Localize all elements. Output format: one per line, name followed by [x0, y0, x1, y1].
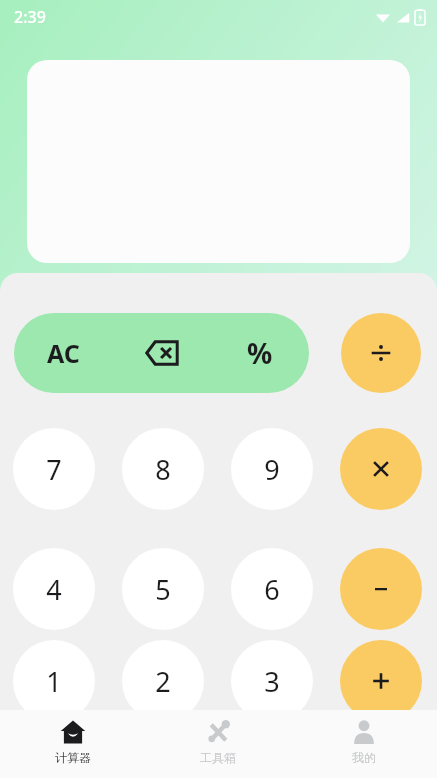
- staticText: 我的: [352, 750, 376, 765]
- button[interactable]: 8: [122, 428, 204, 510]
- staticText: 1: [46, 663, 62, 700]
- button[interactable]: AC: [14, 313, 112, 393]
- staticText: %: [247, 334, 273, 372]
- button[interactable]: Operator: [340, 428, 422, 510]
- staticText: 8: [155, 451, 171, 488]
- staticText: 4: [46, 571, 62, 608]
- button[interactable]: Operator: [341, 313, 421, 393]
- button[interactable]: 3: [231, 640, 313, 722]
- staticText: 2: [155, 663, 171, 700]
- button[interactable]: 6: [231, 548, 313, 630]
- button[interactable]: %: [211, 313, 309, 393]
- staticText: 9: [264, 451, 280, 488]
- staticText: 计算器: [55, 750, 91, 765]
- staticText: 2:39: [14, 6, 46, 28]
- staticText: 5: [155, 571, 171, 608]
- button[interactable]: 1: [13, 640, 95, 722]
- button[interactable]: 计算器: [0, 710, 145, 778]
- button[interactable]: 7: [13, 428, 95, 510]
- button[interactable]: 9: [231, 428, 313, 510]
- button[interactable]: 2: [122, 640, 204, 722]
- button[interactable]: Backspace: [112, 313, 211, 393]
- staticText: 工具箱: [200, 750, 236, 765]
- button[interactable]: 工具箱: [145, 710, 291, 778]
- button[interactable]: Operator: [340, 548, 422, 630]
- button[interactable]: 5: [122, 548, 204, 630]
- staticText: 6: [264, 571, 280, 608]
- button[interactable]: 我的: [291, 710, 437, 778]
- staticText: AC: [47, 336, 80, 370]
- button[interactable]: [27, 60, 410, 263]
- button[interactable]: 4: [13, 548, 95, 630]
- button[interactable]: Operator: [340, 640, 422, 722]
- staticText: 3: [264, 663, 280, 700]
- staticText: 7: [46, 451, 62, 488]
